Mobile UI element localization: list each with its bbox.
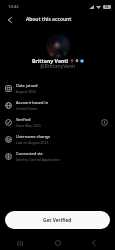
button[interactable]: Profile photo <box>46 34 70 58</box>
button[interactable]: Verified <box>0 114 115 131</box>
button[interactable]: Account based in <box>0 97 115 114</box>
staticText: 84 <box>105 5 109 9</box>
button[interactable]: Username change <box>0 131 115 148</box>
button[interactable]: More info <box>101 119 108 126</box>
button[interactable]: Back <box>87 236 101 250</box>
staticText: August 2022 <box>16 89 36 94</box>
staticText: 10:42 <box>8 4 19 10</box>
button[interactable]: Back <box>3 13 16 26</box>
staticText: Username change <box>16 134 51 139</box>
staticText: Since May 2023 <box>16 123 41 128</box>
staticText: Identity Control Application <box>16 157 60 162</box>
button[interactable]: Home <box>51 236 65 250</box>
staticText: Account based in <box>16 100 49 105</box>
staticText: Get Verified <box>43 217 72 224</box>
staticText: @BrittanyVenti <box>40 63 76 70</box>
staticText: Brittany Venti <box>32 57 69 64</box>
button[interactable]: Get Verified <box>5 211 110 229</box>
staticText: Last on August 2023 <box>16 140 49 145</box>
button[interactable]: Connected via <box>0 148 115 165</box>
button[interactable]: Recent apps <box>13 236 27 250</box>
button[interactable]: Date joined <box>0 80 115 97</box>
staticText: Connected via <box>16 151 43 156</box>
staticText: Date joined <box>16 83 38 88</box>
staticText: United States <box>16 106 38 111</box>
staticText: About this account <box>26 16 72 23</box>
staticText: Verified <box>16 117 31 122</box>
